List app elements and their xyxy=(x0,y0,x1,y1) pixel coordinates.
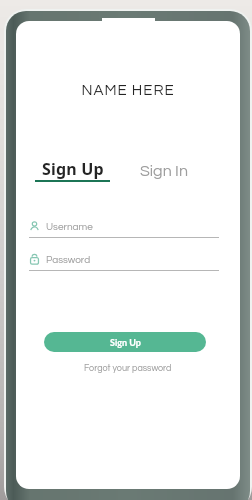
button[interactable]: Sign Up xyxy=(44,332,206,352)
staticText: Password xyxy=(46,255,91,265)
staticText: Username xyxy=(46,222,93,232)
staticText: Sign In xyxy=(140,163,188,179)
staticText: Sign Up xyxy=(110,337,141,348)
staticText: Forgot your password xyxy=(84,364,172,373)
button[interactable]: Sign Up xyxy=(35,158,110,184)
other: Username xyxy=(29,221,40,232)
staticText: Sign Up xyxy=(42,158,104,180)
staticText: NAME HERE xyxy=(16,83,240,98)
other: Password xyxy=(29,254,40,265)
button[interactable]: Forgot your password xyxy=(84,364,172,373)
button[interactable]: Sign In xyxy=(140,163,188,189)
